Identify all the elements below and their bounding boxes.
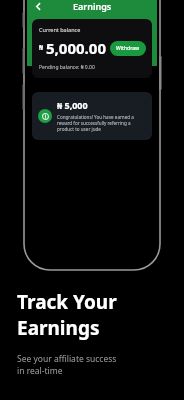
button[interactable]: ₦ 5,000 [32,92,152,140]
staticText: Earnings [73,0,112,12]
staticText: in real-time [17,365,63,377]
staticText: Current balance [39,26,81,33]
button[interactable]: Current balance [32,19,152,78]
staticText: Congratulations! You have earned a rewar… [57,114,145,132]
button[interactable]: Withdraw [110,41,146,56]
staticText: 5,000.00 [46,38,106,58]
staticText: Pending balance: ₦ 0.00 [39,64,95,71]
staticText: Withdraw [116,45,140,52]
staticText: Track Your [17,289,117,315]
staticText: See your affiliate success [17,353,117,365]
staticText: Earnings [17,315,100,341]
staticText: ₦ 5,000 [57,99,88,111]
button[interactable]: Back [30,0,46,14]
staticText: ₦ [39,43,44,53]
